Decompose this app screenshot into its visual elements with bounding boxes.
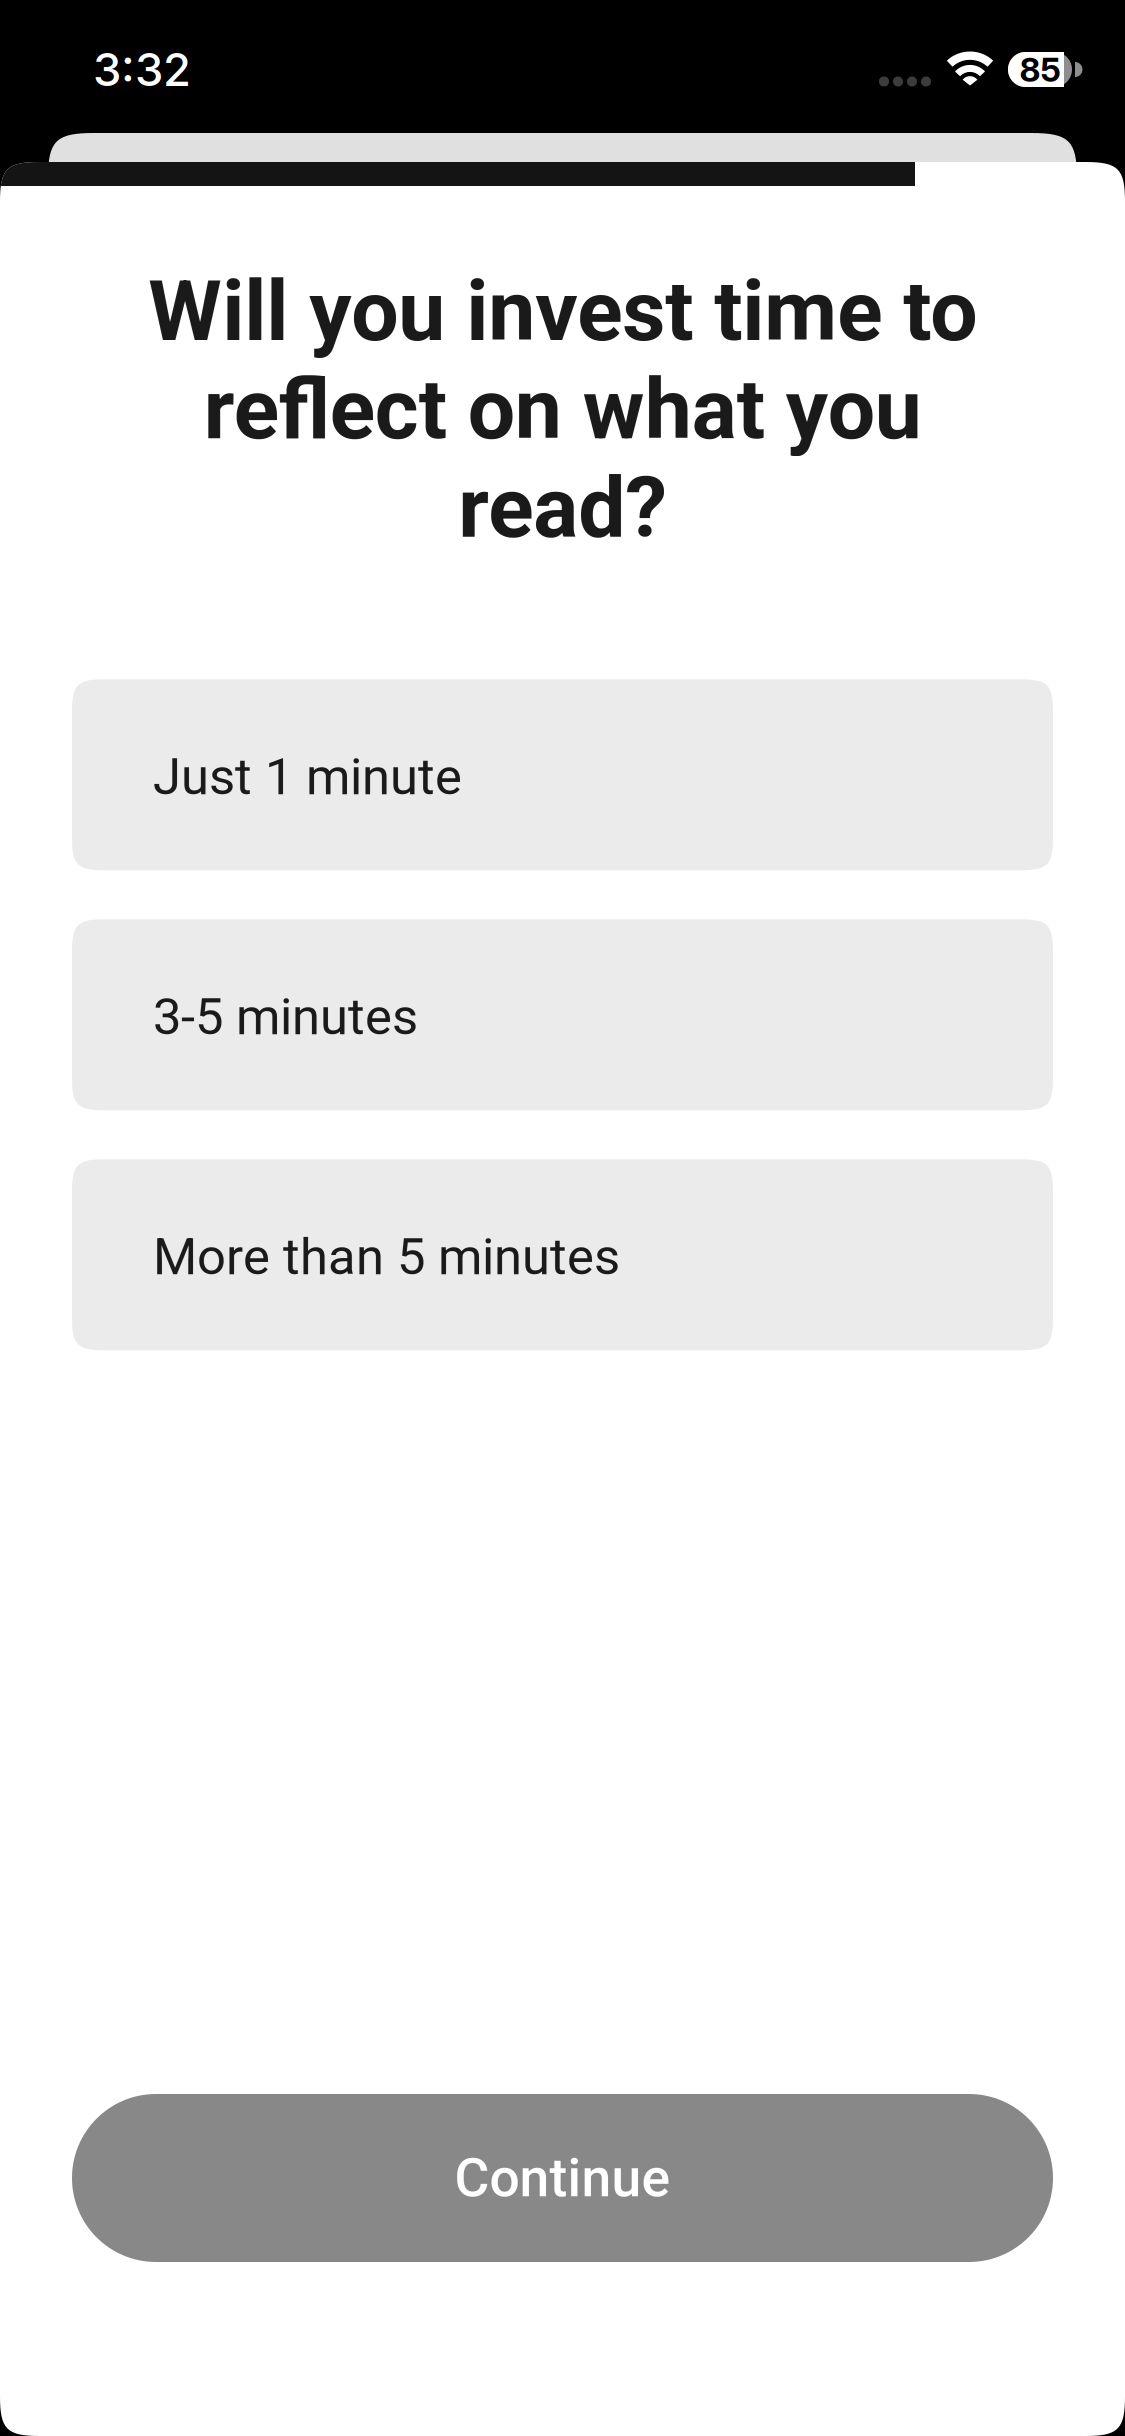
button[interactable]: Just 1 minute (72, 679, 1053, 870)
staticText: Continue (454, 2147, 670, 2209)
button[interactable]: 3-5 minutes (72, 919, 1053, 1110)
staticText: 3-5 minutes (153, 987, 418, 1046)
staticText: Will you invest time to reflect on what … (148, 262, 977, 557)
staticText: 3:32 (93, 42, 191, 97)
button[interactable]: Continue (72, 2094, 1053, 2262)
staticText: Just 1 minute (153, 747, 462, 806)
staticText: 85 (1019, 49, 1060, 90)
staticText: More than 5 minutes (153, 1227, 620, 1286)
button[interactable]: More than 5 minutes (72, 1159, 1053, 1350)
